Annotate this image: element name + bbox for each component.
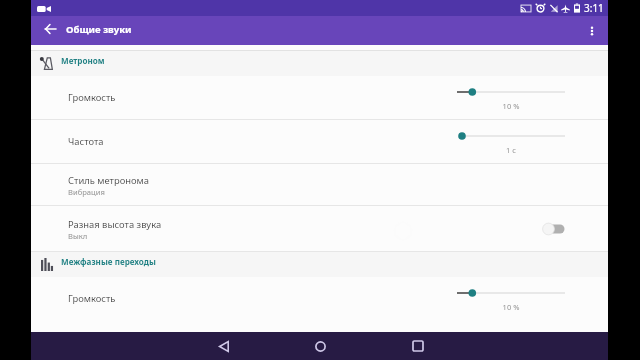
button[interactable]: Разная высота звука — [31, 206, 608, 251]
staticText: Метроном — [61, 55, 105, 66]
button[interactable]: Toggle different pitch — [537, 218, 565, 242]
button[interactable]: Стиль метронома — [31, 164, 608, 205]
staticText: Межфазные переходы — [61, 256, 156, 267]
staticText: 10 % — [481, 302, 541, 312]
staticText: Разная высота звука — [68, 218, 162, 231]
staticText: Частота — [68, 135, 104, 148]
button[interactable]: Recent apps — [404, 332, 432, 360]
staticText: Вибрация — [68, 187, 105, 197]
button[interactable]: Громкость — [31, 277, 608, 320]
staticText: 1 с — [481, 145, 541, 155]
staticText: Громкость — [68, 91, 116, 104]
button[interactable]: Частота — [31, 120, 608, 163]
button[interactable]: Home — [306, 332, 334, 360]
button[interactable]: Back — [210, 332, 238, 360]
staticText: Общие звуки — [66, 23, 132, 36]
button[interactable]: Back — [38, 17, 62, 41]
button[interactable]: More options — [580, 19, 604, 43]
staticText: 10 % — [481, 101, 541, 111]
button[interactable]: Громкость — [31, 76, 608, 119]
staticText: Выкл — [68, 231, 88, 241]
staticText: Громкость — [68, 292, 116, 305]
staticText: 3:11 — [584, 1, 604, 15]
staticText: Стиль метронома — [68, 174, 150, 187]
